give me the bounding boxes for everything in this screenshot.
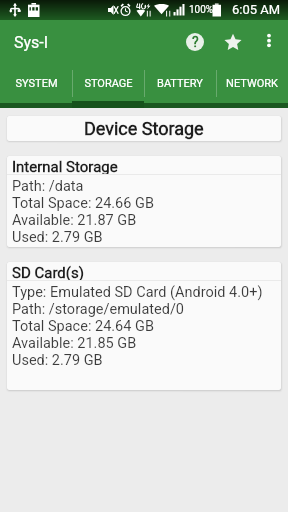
staticText: SD Card(s) xyxy=(12,264,84,280)
staticText: Used: 2.79 GB xyxy=(12,229,103,246)
staticText: Device Storage xyxy=(84,118,204,139)
staticText: Path: /data xyxy=(12,178,84,195)
staticText: Available: 21.87 GB xyxy=(12,212,137,229)
staticText: Internal Storage xyxy=(12,158,118,174)
staticText: Type: Emulated SD Card (Android 4.0+) xyxy=(12,284,263,301)
staticText: ? xyxy=(192,34,199,50)
button[interactable]: BATTERY xyxy=(144,64,216,103)
staticText: Total Space: 24.64 GB xyxy=(12,318,154,335)
button[interactable]: Help xyxy=(176,23,214,61)
staticText: STORAGE xyxy=(84,77,133,90)
button[interactable]: More options xyxy=(252,25,286,59)
button[interactable]: Favorite xyxy=(214,23,252,61)
staticText: Available: 21.85 GB xyxy=(12,335,137,352)
staticText: 100% xyxy=(189,4,214,16)
staticText: BATTERY xyxy=(157,77,203,90)
staticText: Sys-I xyxy=(14,33,49,52)
button[interactable]: STORAGE xyxy=(72,64,144,103)
staticText: Used: 2.79 GB xyxy=(12,352,103,369)
button[interactable]: NETWORK xyxy=(216,64,288,103)
staticText: 6:05 AM xyxy=(232,2,281,17)
staticText: SYSTEM xyxy=(15,77,58,90)
staticText: Path: /storage/emulated/0 xyxy=(12,301,185,318)
staticText: NETWORK xyxy=(226,77,278,90)
staticText: Total Space: 24.66 GB xyxy=(12,195,154,212)
button[interactable]: SYSTEM xyxy=(0,64,72,103)
